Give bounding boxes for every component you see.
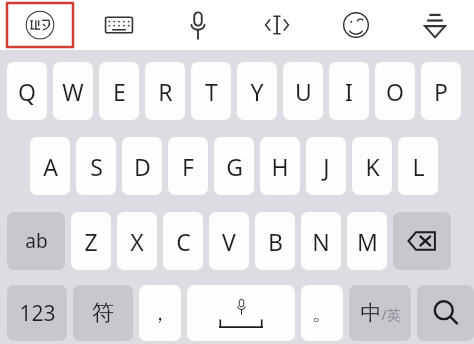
- staticText: D: [134, 151, 151, 182]
- staticText: ab: [25, 228, 48, 254]
- staticText: Q: [18, 76, 36, 107]
- staticText: V: [222, 226, 236, 257]
- staticText: K: [365, 151, 380, 182]
- button[interactable]: ab: [7, 212, 65, 270]
- button[interactable]: U: [283, 62, 323, 120]
- staticText: A: [43, 151, 58, 182]
- staticText: X: [130, 226, 144, 257]
- button[interactable]: E: [99, 62, 139, 120]
- button[interactable]: iFlytek input method: [0, 0, 79, 50]
- button[interactable]: V: [209, 212, 249, 270]
- button[interactable]: G: [214, 137, 254, 195]
- staticText: G: [226, 151, 243, 182]
- button[interactable]: 符: [73, 285, 133, 341]
- button[interactable]: W: [53, 62, 93, 120]
- button[interactable]: Move cursor: [237, 0, 316, 50]
- staticText: J: [323, 151, 330, 182]
- staticText: C: [176, 226, 191, 257]
- staticText: B: [268, 226, 283, 257]
- button[interactable]: F: [168, 137, 208, 195]
- staticText: N: [312, 226, 330, 257]
- button[interactable]: Q: [7, 62, 47, 120]
- button[interactable]: B: [255, 212, 295, 270]
- button[interactable]: Z: [71, 212, 111, 270]
- staticText: M: [357, 226, 378, 257]
- button[interactable]: P: [421, 62, 461, 120]
- staticText: 。: [312, 301, 332, 326]
- button[interactable]: Hide keyboard: [395, 0, 474, 50]
- button[interactable]: Backspace: [393, 212, 451, 270]
- button[interactable]: Keyboard layout: [79, 0, 158, 50]
- button[interactable]: M: [347, 212, 387, 270]
- staticText: 中/英: [360, 300, 401, 326]
- button[interactable]: I: [329, 62, 369, 120]
- staticText: Y: [250, 76, 264, 107]
- button[interactable]: 123: [7, 285, 67, 341]
- button[interactable]: Emoji: [316, 0, 395, 50]
- staticText: F: [182, 151, 194, 182]
- button[interactable]: L: [398, 137, 438, 195]
- button[interactable]: J: [306, 137, 346, 195]
- button[interactable]: D: [122, 137, 162, 195]
- button[interactable]: K: [352, 137, 392, 195]
- staticText: T: [205, 76, 218, 107]
- button[interactable]: Space, hold for voice input: [187, 285, 295, 341]
- staticText: 123: [19, 299, 56, 328]
- button[interactable]: Voice input: [158, 0, 237, 50]
- staticText: Z: [84, 226, 98, 257]
- button[interactable]: Y: [237, 62, 277, 120]
- button[interactable]: H: [260, 137, 300, 195]
- staticText: S: [90, 151, 103, 182]
- button[interactable]: Search: [417, 285, 474, 341]
- button[interactable]: C: [163, 212, 203, 270]
- staticText: 符: [92, 299, 114, 327]
- button[interactable]: Chinese English toggle: [349, 285, 411, 341]
- staticText: P: [434, 76, 448, 107]
- button[interactable]: O: [375, 62, 415, 120]
- button[interactable]: X: [117, 212, 157, 270]
- staticText: I: [345, 76, 353, 107]
- staticText: W: [62, 76, 84, 107]
- button[interactable]: T: [191, 62, 231, 120]
- staticText: E: [113, 76, 126, 107]
- button[interactable]: N: [301, 212, 341, 270]
- staticText: U: [295, 76, 312, 107]
- button[interactable]: R: [145, 62, 185, 120]
- button[interactable]: 。: [301, 285, 343, 341]
- staticText: R: [158, 76, 173, 107]
- button[interactable]: ，: [139, 285, 181, 341]
- button[interactable]: S: [76, 137, 116, 195]
- staticText: ，: [150, 301, 170, 326]
- staticText: H: [271, 151, 289, 182]
- button[interactable]: A: [30, 137, 70, 195]
- staticText: O: [386, 76, 404, 107]
- staticText: L: [412, 151, 425, 182]
